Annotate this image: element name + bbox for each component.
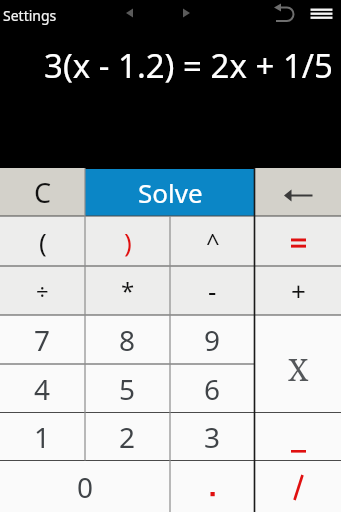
button[interactable]: C — [0, 168, 85, 216]
staticText: 3 — [204, 418, 221, 456]
button[interactable]: ÷ — [0, 266, 85, 315]
staticText: ) — [124, 224, 132, 259]
button[interactable]: 1 — [0, 413, 85, 461]
button[interactable] — [170, 461, 255, 512]
button[interactable]: 9 — [170, 315, 255, 364]
button[interactable]: ( — [0, 216, 85, 266]
staticText: ^ — [206, 225, 220, 258]
button[interactable]: Solve — [85, 169, 255, 216]
staticText: 0 — [77, 468, 94, 506]
button[interactable]: + — [255, 266, 341, 315]
staticText: * — [121, 274, 135, 307]
staticText: C — [34, 174, 52, 211]
button[interactable]: 6 — [170, 364, 255, 413]
staticText: 5 — [119, 370, 136, 408]
button[interactable] — [255, 168, 341, 216]
button[interactable] — [270, 1, 298, 29]
button[interactable]: ) — [85, 216, 170, 266]
button[interactable]: 8 — [85, 315, 170, 364]
staticText: Solve — [138, 175, 203, 210]
staticText: 9 — [204, 321, 221, 359]
button[interactable] — [305, 1, 339, 27]
button[interactable] — [255, 216, 341, 266]
button[interactable]: 0 — [0, 461, 170, 512]
button[interactable] — [255, 461, 341, 512]
staticText: ( — [39, 224, 47, 259]
button[interactable]: 4 — [0, 364, 85, 413]
button[interactable]: - — [170, 266, 255, 315]
staticText: Settings — [3, 6, 57, 25]
button[interactable]: 2 — [85, 413, 170, 461]
button[interactable] — [114, 2, 140, 28]
staticText: X — [288, 348, 309, 390]
button[interactable]: 5 — [85, 364, 170, 413]
button[interactable] — [176, 2, 202, 28]
button[interactable]: 3 — [170, 413, 255, 461]
button[interactable]: * — [85, 266, 170, 315]
button[interactable]: ^ — [170, 216, 255, 266]
button[interactable]: X — [255, 315, 341, 413]
staticText: ÷ — [36, 276, 49, 306]
staticText: 7 — [34, 321, 51, 359]
staticText: 6 — [204, 370, 221, 408]
staticText: 4 — [34, 370, 51, 408]
staticText: 3(x - 1.2) = 2x + 1/5 — [44, 43, 333, 88]
staticText: + — [291, 273, 306, 308]
button[interactable] — [255, 413, 341, 461]
staticText: 2 — [119, 418, 136, 456]
staticText: 8 — [119, 321, 136, 359]
button[interactable]: 7 — [0, 315, 85, 364]
staticText: - — [208, 273, 217, 308]
staticText: 1 — [34, 418, 51, 456]
button[interactable]: Settings — [0, 0, 80, 30]
